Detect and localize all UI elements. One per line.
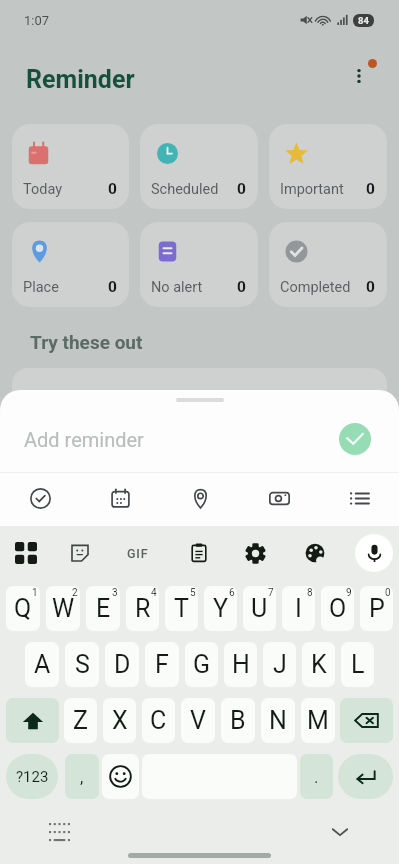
staticText: 9 (346, 587, 352, 599)
button[interactable]: Emoji (102, 754, 139, 799)
staticText: O (329, 594, 347, 623)
staticText: ?123 (16, 768, 49, 786)
button[interactable]: P (360, 586, 393, 631)
staticText: 0 (108, 278, 117, 296)
staticText: B (230, 706, 246, 735)
button[interactable]: I (282, 586, 315, 631)
staticText: M (307, 706, 329, 735)
staticText: R (135, 594, 151, 623)
button[interactable]: R (126, 586, 159, 631)
button[interactable]: Backspace (340, 698, 393, 743)
staticText: 5 (190, 587, 196, 599)
button[interactable]: S (65, 642, 99, 687)
staticText: 0 (108, 180, 117, 198)
button[interactable]: Stickers (63, 536, 97, 570)
button[interactable]: N (261, 698, 295, 743)
staticText: S (75, 650, 90, 679)
staticText: Q (14, 594, 32, 623)
staticText: C (150, 706, 167, 735)
button[interactable]: Place (12, 222, 129, 307)
button[interactable]: Hide keyboard (325, 817, 355, 847)
button[interactable]: Y (204, 586, 237, 631)
button[interactable]: V (181, 698, 215, 743)
staticText: 1 (32, 587, 38, 599)
staticText: 7 (268, 587, 274, 599)
staticText: W (52, 594, 75, 623)
button[interactable]: Place (183, 481, 217, 515)
button[interactable]: Scheduled (140, 124, 258, 209)
staticText: 6 (229, 587, 235, 599)
button[interactable]: H (224, 642, 257, 687)
button[interactable]: E (86, 586, 120, 631)
button[interactable]: More options (344, 61, 374, 91)
staticText: GIF (127, 546, 149, 561)
staticText: L (351, 650, 365, 679)
button[interactable]: K (302, 642, 335, 687)
staticText: 0 (237, 278, 246, 296)
staticText: Place (23, 279, 59, 296)
staticText: Completed (280, 279, 351, 296)
button[interactable]: Apps (9, 536, 43, 570)
button[interactable]: Switch keyboard (44, 817, 74, 847)
staticText: 2 (72, 587, 78, 599)
button[interactable]: A (25, 642, 59, 687)
staticText: 0 (366, 278, 375, 296)
staticText: 0 (237, 180, 246, 198)
staticText: N (269, 706, 287, 735)
staticText: 4 (151, 587, 157, 599)
button[interactable]: Z (64, 698, 97, 743)
button[interactable]: L (341, 642, 374, 687)
button[interactable]: Voice input (355, 534, 393, 572)
button[interactable]: . (300, 754, 333, 799)
staticText: H (232, 650, 250, 679)
button[interactable]: Theme (298, 536, 332, 570)
staticText: X (112, 706, 128, 735)
staticText: Y (213, 594, 229, 623)
staticText: No alert (151, 279, 203, 296)
button[interactable]: GIF (121, 536, 155, 570)
staticText: 8 (307, 587, 313, 599)
staticText: J (273, 650, 287, 679)
staticText: T (174, 594, 189, 623)
button[interactable]: B (221, 698, 255, 743)
button[interactable]: Important (269, 124, 387, 209)
button[interactable]: Enter (338, 754, 393, 799)
button[interactable]: T (165, 586, 198, 631)
button[interactable]: Date (103, 481, 137, 515)
staticText: V (190, 706, 206, 735)
staticText: I (295, 594, 302, 623)
staticText: Reminder (26, 65, 135, 94)
staticText: A (34, 650, 51, 679)
button[interactable]: , (65, 754, 99, 799)
staticText: P (369, 594, 385, 623)
button[interactable]: O (321, 586, 354, 631)
button[interactable]: M (301, 698, 335, 743)
button[interactable]: C (142, 698, 175, 743)
button[interactable]: Clipboard (182, 536, 216, 570)
button[interactable]: Completed (269, 222, 387, 307)
button[interactable]: X (103, 698, 136, 743)
button[interactable]: Shift (6, 698, 59, 743)
button[interactable]: Save reminder (339, 423, 371, 455)
button[interactable]: W (46, 586, 80, 631)
button[interactable]: Q (6, 586, 40, 631)
button[interactable]: Complete (23, 481, 57, 515)
button[interactable]: U (243, 586, 276, 631)
button[interactable]: F (145, 642, 179, 687)
button[interactable]: No alert (140, 222, 258, 307)
staticText: . (314, 767, 319, 787)
button[interactable]: D (105, 642, 139, 687)
button[interactable]: Today (12, 124, 129, 209)
staticText: 0 (385, 587, 391, 599)
button[interactable]: J (263, 642, 296, 687)
staticText: Try these out (30, 331, 143, 353)
button[interactable]: ?123 (6, 754, 58, 799)
button[interactable]: Settings (238, 536, 272, 570)
button[interactable]: G (185, 642, 218, 687)
staticText: 1:07 (24, 13, 50, 28)
staticText: Important (280, 181, 344, 198)
staticText: G (193, 650, 211, 679)
button[interactable]: Photo (262, 481, 296, 515)
button[interactable]: List (342, 481, 376, 515)
